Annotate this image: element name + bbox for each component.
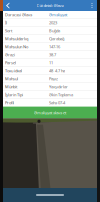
staticText: Əkin Toplama [49, 92, 73, 97]
staticText: Əməliyyat əlavə et [34, 110, 66, 115]
button[interactable]: Toxu idxal [3, 67, 97, 75]
button[interactable]: Back [3, 0, 13, 11]
staticText: Yaxşıdırlar [49, 84, 68, 89]
button[interactable]: Sort [3, 27, 97, 35]
staticText: Məhsuldarlıq [5, 36, 28, 41]
staticText: Profil [5, 100, 14, 105]
button[interactable]: More options [87, 0, 97, 11]
staticText: Məhsul [5, 76, 18, 81]
staticText: 48 4.7 ha [49, 68, 65, 73]
button[interactable]: Münbit [3, 83, 97, 91]
staticText: 38.7 [49, 52, 56, 57]
staticText: Münbit [5, 84, 17, 89]
staticText: Buğda [49, 28, 60, 33]
button[interactable]: İşlərin Tipi [3, 91, 97, 99]
button[interactable]: Ərazi [3, 51, 97, 59]
button[interactable]: Profil [3, 99, 97, 107]
staticText: Məhsulun No [5, 44, 28, 49]
staticText: Sort [5, 28, 12, 33]
staticText: 11 [49, 60, 53, 65]
staticText: 147-16 [49, 44, 60, 49]
staticText: Ərazi [5, 52, 15, 57]
staticText: İl [5, 20, 7, 25]
staticText: Payız [49, 76, 58, 81]
button[interactable]: Məhsulun No [3, 43, 97, 51]
staticText: İşlərin Tipi [5, 92, 23, 97]
staticText: Əməliyyat [49, 12, 67, 17]
button[interactable]: Məhsul [3, 75, 97, 83]
staticText: Sahə 07-4 [49, 100, 65, 105]
staticText: 2023 [49, 20, 57, 25]
button[interactable]: Məhsuldarlıq [3, 35, 97, 43]
button[interactable]: Parsel [3, 59, 97, 67]
staticText: Cüt detalı Əlavə [36, 3, 63, 8]
staticText: Parsel [5, 60, 16, 65]
button[interactable]: İl [3, 19, 97, 27]
button[interactable]: Əməliyyat əlavə et [3, 107, 97, 119]
staticText: Qarabağ [49, 36, 64, 41]
staticText: Dərəcəsi Əlavə [5, 12, 32, 17]
button[interactable]: Dərəcəsi Əlavə [3, 11, 97, 19]
staticText: Toxu idxal [5, 68, 22, 73]
